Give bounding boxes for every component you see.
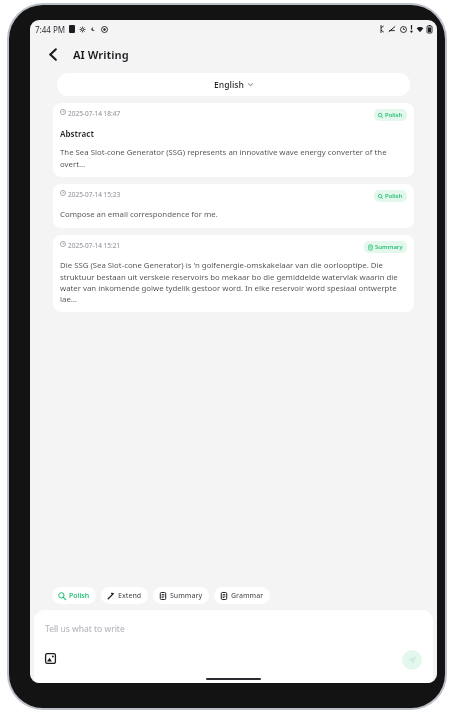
button[interactable]: Summary xyxy=(153,587,209,604)
staticText: 2025-07-14 15:21 xyxy=(68,241,121,250)
staticText: Polish xyxy=(385,192,403,200)
button[interactable]: Send xyxy=(402,650,422,670)
staticText: 2025-07-14 15:23 xyxy=(68,190,121,199)
staticText: English xyxy=(214,79,244,91)
staticText: Abstract xyxy=(60,128,94,139)
button[interactable]: 2025-07-14 15:21 xyxy=(53,235,414,312)
staticText: Polish xyxy=(69,591,90,601)
staticText: AI Writing xyxy=(73,47,129,62)
staticText: Summary xyxy=(170,591,203,601)
button[interactable]: English xyxy=(57,73,410,96)
button[interactable]: Add image xyxy=(44,652,57,665)
staticText: 2025-07-14 18:47 xyxy=(68,109,121,118)
staticText: The Sea Slot-cone Generator (SSG) repres… xyxy=(60,147,407,169)
button[interactable]: 2025-07-14 18:47 xyxy=(53,103,414,177)
staticText: Summary xyxy=(375,243,403,251)
button[interactable]: Polish xyxy=(52,587,96,604)
staticText: Die SSG (Sea Slot-cone Generator) is 'n … xyxy=(60,260,407,304)
button[interactable]: 2025-07-14 15:23 xyxy=(53,184,414,228)
button[interactable]: Grammar xyxy=(214,587,270,604)
button[interactable]: Extend xyxy=(101,587,148,604)
staticText: 7:44 PM xyxy=(35,24,66,35)
staticText: Compose an email correspondence for me. xyxy=(60,209,218,220)
button[interactable]: Back xyxy=(40,41,66,67)
staticText: Extend xyxy=(118,591,142,601)
staticText: Grammar xyxy=(231,591,264,601)
button[interactable]: Tell us what to write xyxy=(45,623,125,635)
staticText: Polish xyxy=(385,111,403,119)
